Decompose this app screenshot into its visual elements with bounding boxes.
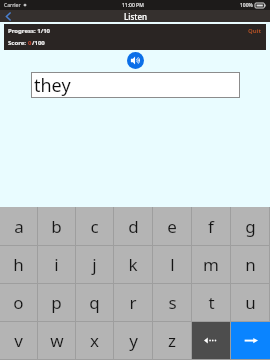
button[interactable]: Enter bbox=[231, 322, 270, 359]
button[interactable]: o bbox=[0, 284, 37, 321]
staticText: p bbox=[51, 291, 62, 314]
staticText: c bbox=[90, 215, 99, 238]
staticText: 11:00 PM bbox=[122, 2, 144, 9]
button[interactable]: z bbox=[153, 322, 191, 359]
staticText: z bbox=[168, 329, 176, 352]
button[interactable]: s bbox=[153, 284, 191, 321]
staticText: they bbox=[34, 73, 71, 98]
button[interactable]: Back bbox=[2, 10, 14, 22]
staticText: r bbox=[129, 291, 137, 314]
staticText: 0 bbox=[28, 39, 32, 47]
staticText: f bbox=[208, 215, 214, 238]
button[interactable]: Quit bbox=[248, 27, 262, 35]
button[interactable]: q bbox=[76, 284, 113, 321]
button[interactable]: u bbox=[231, 284, 269, 321]
button[interactable]: k bbox=[114, 246, 152, 283]
button[interactable]: y bbox=[114, 322, 152, 359]
button[interactable]: a bbox=[0, 207, 37, 245]
staticText: Carrier bbox=[4, 2, 21, 9]
staticText: m bbox=[203, 253, 219, 276]
staticText: l bbox=[170, 253, 175, 276]
staticText: e bbox=[167, 215, 177, 238]
staticText: w bbox=[50, 329, 64, 352]
button[interactable]: d bbox=[114, 207, 152, 245]
button[interactable]: b bbox=[38, 207, 75, 245]
button[interactable]: p bbox=[38, 284, 75, 321]
button[interactable]: g bbox=[231, 207, 269, 245]
staticText: k bbox=[128, 253, 138, 276]
staticText: v bbox=[14, 329, 23, 352]
staticText: t bbox=[208, 291, 215, 314]
button[interactable]: x bbox=[76, 322, 113, 359]
button[interactable]: Play audio bbox=[127, 52, 144, 69]
button[interactable]: Backspace bbox=[192, 322, 230, 359]
button[interactable]: v bbox=[0, 322, 37, 359]
staticText: a bbox=[14, 215, 24, 238]
button[interactable]: they bbox=[31, 72, 240, 98]
button[interactable]: c bbox=[76, 207, 113, 245]
staticText: g bbox=[245, 215, 256, 238]
button[interactable]: t bbox=[192, 284, 230, 321]
button[interactable]: m bbox=[192, 246, 230, 283]
button[interactable]: r bbox=[114, 284, 152, 321]
button[interactable]: h bbox=[0, 246, 37, 283]
staticText: y bbox=[129, 329, 138, 352]
staticText: u bbox=[245, 291, 256, 314]
staticText: n bbox=[245, 253, 256, 276]
button[interactable]: n bbox=[231, 246, 269, 283]
button[interactable]: i bbox=[38, 246, 75, 283]
staticText: /100 bbox=[32, 39, 45, 47]
staticText: b bbox=[51, 215, 62, 238]
staticText: o bbox=[13, 291, 24, 314]
button[interactable]: e bbox=[153, 207, 191, 245]
staticText: Listen bbox=[124, 11, 147, 22]
staticText: q bbox=[89, 291, 100, 314]
staticText: j bbox=[92, 253, 97, 276]
staticText: h bbox=[13, 253, 24, 276]
button[interactable]: w bbox=[38, 322, 75, 359]
staticText: Score: bbox=[8, 39, 28, 47]
button[interactable]: l bbox=[153, 246, 191, 283]
button[interactable]: j bbox=[76, 246, 113, 283]
staticText: 100% bbox=[240, 2, 253, 9]
staticText: s bbox=[168, 291, 177, 314]
staticText: Progress: 1/10 bbox=[8, 27, 51, 35]
staticText: i bbox=[54, 253, 59, 276]
staticText: Quit bbox=[248, 27, 262, 35]
staticText: d bbox=[128, 215, 139, 238]
button[interactable]: f bbox=[192, 207, 230, 245]
staticText: x bbox=[90, 329, 99, 352]
